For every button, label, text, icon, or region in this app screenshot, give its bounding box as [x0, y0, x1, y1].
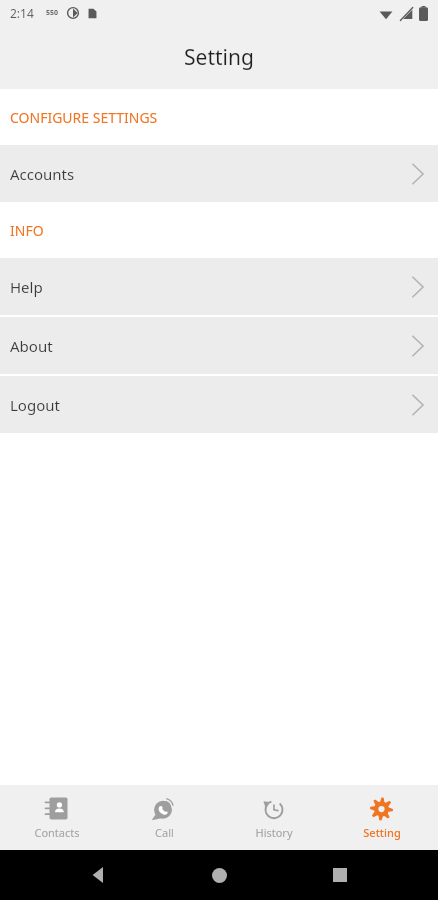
button[interactable]: Setting	[329, 785, 434, 850]
staticText: Setting	[363, 825, 401, 840]
button[interactable]: Logout	[0, 376, 438, 433]
button[interactable]: Help	[0, 258, 438, 315]
button[interactable]: Back	[77, 853, 121, 897]
button[interactable]: About	[0, 317, 438, 374]
button[interactable]: Recent apps	[318, 853, 362, 897]
button[interactable]: Accounts	[0, 145, 438, 202]
staticText: CONFIGURE SETTINGS	[10, 108, 158, 127]
staticText: Setting	[184, 43, 254, 72]
staticText: 2:14	[10, 5, 34, 21]
staticText: Accounts	[10, 164, 75, 184]
staticText: 550	[46, 8, 59, 18]
staticText: History	[255, 825, 293, 840]
button[interactable]: Call	[112, 785, 217, 850]
button[interactable]: History	[221, 785, 326, 850]
staticText: INFO	[10, 221, 44, 240]
staticText: Help	[10, 277, 43, 297]
staticText: Contacts	[34, 825, 80, 840]
staticText: Call	[155, 825, 174, 840]
button[interactable]: Contacts	[4, 785, 109, 850]
button[interactable]: Home	[197, 853, 241, 897]
staticText: Logout	[10, 395, 60, 415]
staticText: About	[10, 336, 53, 356]
